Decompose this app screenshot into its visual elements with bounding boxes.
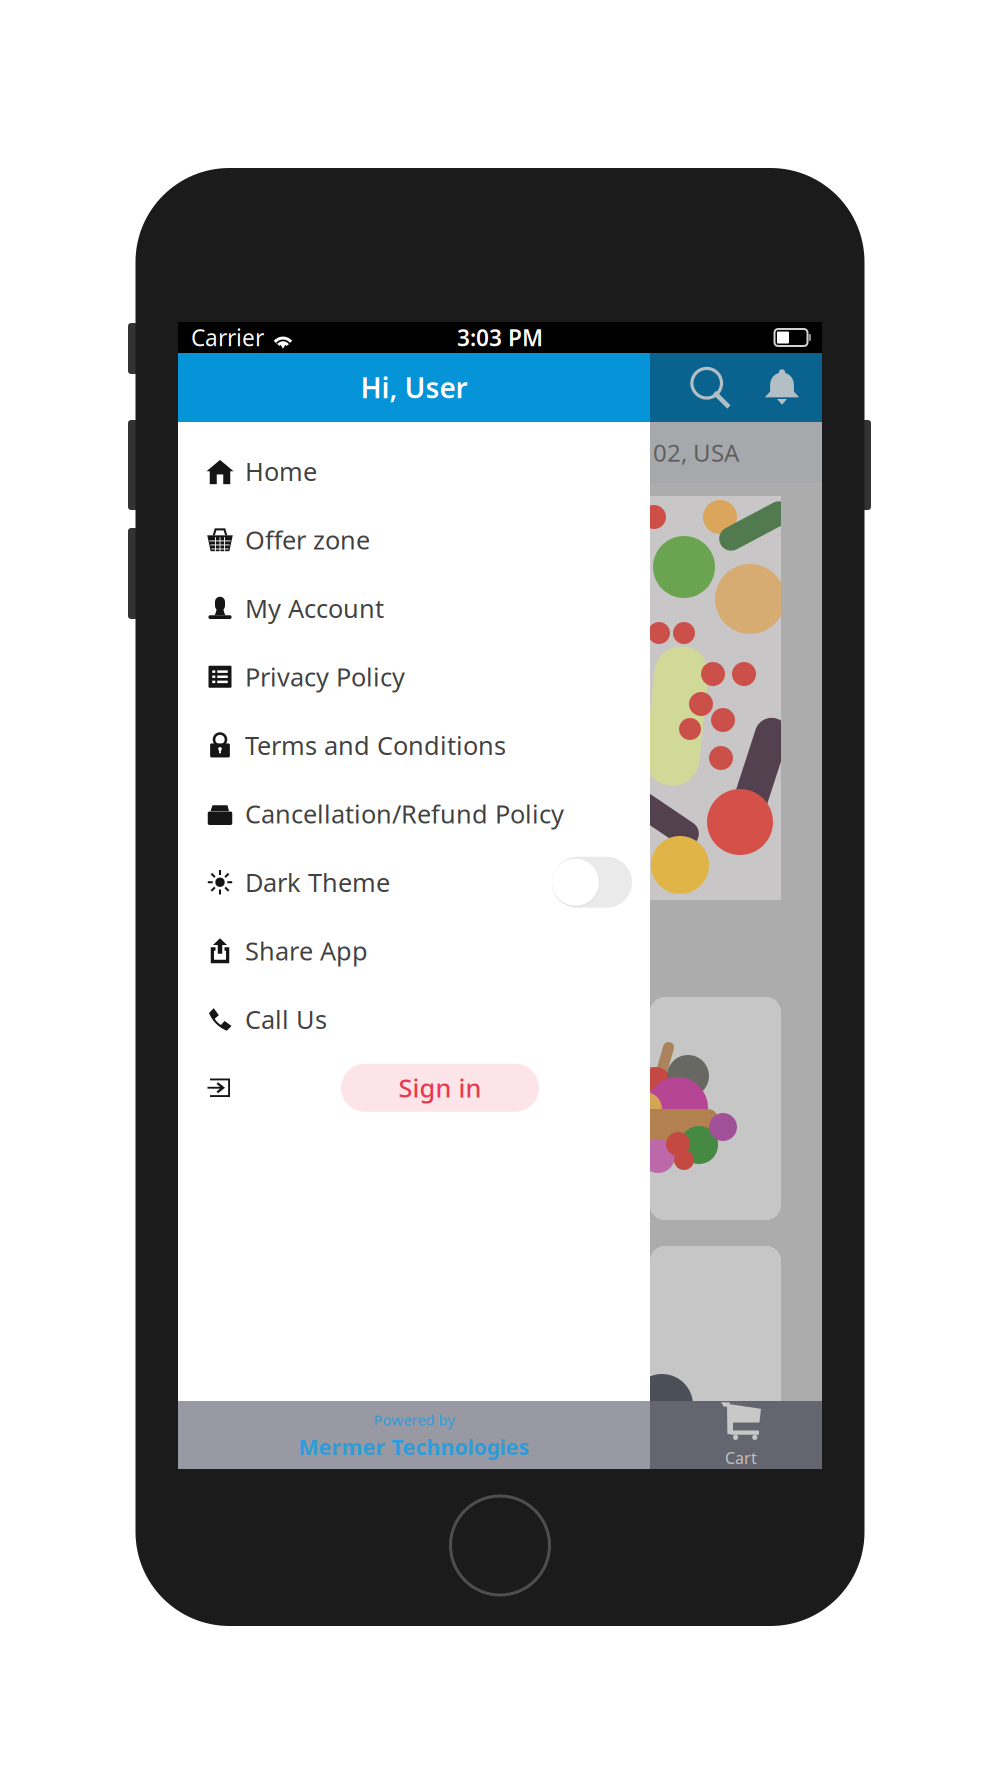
button[interactable]: Cancellation/Refund Policy (178, 779, 650, 848)
staticText: Cancellation/Refund Policy (245, 797, 564, 830)
staticText: Mermer Technologies (298, 1432, 529, 1461)
button[interactable]: Sign in (341, 1064, 539, 1112)
staticText: Call Us (245, 1002, 327, 1036)
staticText: 3:03 PM (457, 322, 543, 352)
staticText: Share App (245, 934, 368, 967)
button[interactable]: Cart (650, 1401, 822, 1469)
staticText: Powered by (373, 1410, 454, 1429)
staticText: Home (245, 454, 317, 488)
staticText: Privacy Policy (245, 660, 405, 693)
staticText: Hi, User (360, 369, 467, 406)
staticText: Offer zone (245, 523, 370, 556)
button[interactable]: Home (178, 437, 650, 505)
button[interactable]: Privacy Policy (178, 642, 650, 711)
staticText: My Account (245, 591, 384, 625)
staticText: Sign in (398, 1071, 481, 1104)
button[interactable]: Share App (178, 916, 650, 985)
button[interactable]: Dark Theme (178, 848, 650, 916)
button[interactable]: Notifications (756, 353, 808, 422)
staticText: Dark Theme (245, 865, 390, 899)
button[interactable]: My Account (178, 574, 650, 642)
button[interactable]: Terms and Conditions (178, 711, 650, 779)
staticText: Carrier (191, 322, 264, 352)
staticText: 02, USA (653, 437, 739, 468)
button[interactable]: Offer zone (178, 505, 650, 574)
staticText: Terms and Conditions (245, 728, 506, 762)
staticText: Cart (725, 1447, 757, 1468)
button[interactable]: Search (685, 353, 737, 422)
button[interactable]: Call Us (178, 985, 650, 1053)
